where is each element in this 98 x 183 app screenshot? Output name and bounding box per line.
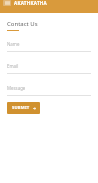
staticText: Name bbox=[7, 41, 20, 47]
staticText: AKATHKATHA bbox=[14, 0, 48, 6]
button[interactable]: Message bbox=[7, 85, 91, 96]
staticText: Contact Us bbox=[7, 20, 38, 28]
staticText: SUBMIT bbox=[12, 105, 30, 111]
button[interactable]: SUBMIT bbox=[7, 102, 40, 114]
staticText: Message bbox=[7, 85, 26, 91]
staticText: Email bbox=[7, 63, 19, 69]
button[interactable]: Email bbox=[7, 63, 91, 74]
button[interactable]: Open navigation menu bbox=[3, 0, 11, 6]
button[interactable]: Name bbox=[7, 41, 91, 52]
